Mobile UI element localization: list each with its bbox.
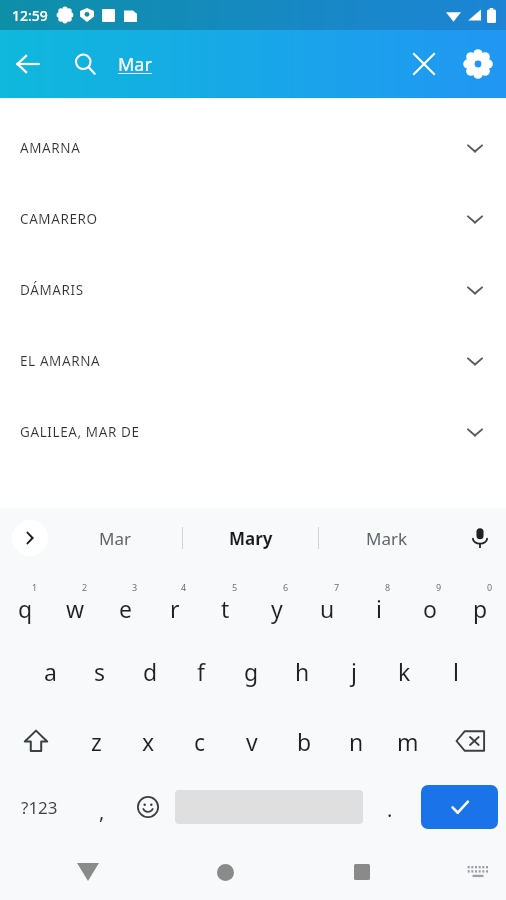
staticText: 1 xyxy=(32,581,38,593)
button[interactable]: 8 xyxy=(353,568,404,636)
button[interactable]: Enter xyxy=(421,785,498,829)
staticText: GALILEA, MAR DE xyxy=(20,423,140,441)
staticText: c xyxy=(194,726,206,757)
button[interactable]: d xyxy=(125,636,175,706)
button[interactable]: Clear xyxy=(398,38,450,90)
button[interactable]: ?123 xyxy=(0,776,78,838)
button[interactable]: 3 xyxy=(100,568,150,636)
button[interactable]: Settings xyxy=(450,36,506,92)
staticText: 4 xyxy=(181,581,187,593)
button[interactable]: m xyxy=(382,706,434,776)
staticText: EL AMARNA xyxy=(20,352,101,370)
button[interactable]: 1 xyxy=(0,568,50,636)
button[interactable]: AMARNA xyxy=(0,112,506,183)
button[interactable]: Back xyxy=(0,36,56,92)
staticText: o xyxy=(423,593,437,624)
staticText: 8 xyxy=(385,581,391,593)
button[interactable]: 4 xyxy=(150,568,200,636)
staticText: z xyxy=(91,726,102,757)
staticText: 2 xyxy=(82,581,88,593)
staticText: 3 xyxy=(132,581,138,593)
button[interactable]: Comma xyxy=(78,776,125,838)
button[interactable]: k xyxy=(379,636,430,706)
staticText: l xyxy=(453,656,459,687)
button[interactable]: Period xyxy=(367,776,413,838)
button[interactable]: Mar xyxy=(48,508,182,568)
staticText: j xyxy=(351,656,357,687)
staticText: Mar xyxy=(118,52,152,77)
button[interactable]: b xyxy=(278,706,330,776)
staticText: k xyxy=(398,656,411,687)
staticText: v xyxy=(246,726,258,757)
staticText: n xyxy=(349,726,364,757)
button[interactable]: Emoji xyxy=(125,776,171,838)
staticText: 12:59 xyxy=(12,6,48,25)
button[interactable]: 7 xyxy=(302,568,353,636)
button[interactable]: g xyxy=(226,636,277,706)
button[interactable]: Voice input xyxy=(454,508,506,568)
button[interactable]: l xyxy=(430,636,481,706)
staticText: x xyxy=(142,726,155,757)
button[interactable]: Mary xyxy=(183,508,318,568)
button[interactable]: Recents xyxy=(338,848,386,896)
button[interactable]: a xyxy=(25,636,75,706)
staticText: p xyxy=(473,593,488,624)
staticText: b xyxy=(297,726,312,757)
staticText: d xyxy=(143,656,158,687)
button[interactable]: EL AMARNA xyxy=(0,325,506,396)
button[interactable]: n xyxy=(330,706,382,776)
button[interactable]: 6 xyxy=(251,568,302,636)
staticText: ?123 xyxy=(21,796,58,819)
button[interactable]: 2 xyxy=(50,568,100,636)
staticText: g xyxy=(244,656,259,687)
staticText: e xyxy=(119,593,132,624)
button[interactable]: Backspace xyxy=(434,706,506,776)
staticText: q xyxy=(18,593,33,624)
staticText: m xyxy=(397,726,419,757)
button[interactable]: CAMARERO xyxy=(0,183,506,254)
staticText: 6 xyxy=(283,581,289,593)
button[interactable]: 5 xyxy=(200,568,251,636)
button[interactable]: s xyxy=(75,636,125,706)
button[interactable]: j xyxy=(328,636,379,706)
staticText: , xyxy=(99,798,105,825)
staticText: CAMARERO xyxy=(20,210,98,228)
button[interactable]: x xyxy=(122,706,174,776)
button[interactable]: Switch keyboard xyxy=(456,850,500,894)
staticText: 7 xyxy=(334,581,340,593)
button[interactable]: GALILEA, MAR DE xyxy=(0,396,506,467)
staticText: h xyxy=(295,656,310,687)
staticText: Mark xyxy=(366,527,408,550)
button[interactable]: f xyxy=(175,636,226,706)
staticText: w xyxy=(66,593,85,624)
button[interactable]: 9 xyxy=(404,568,455,636)
staticText: s xyxy=(94,656,106,687)
button[interactable]: h xyxy=(277,636,328,706)
staticText: f xyxy=(197,656,205,687)
button[interactable]: z xyxy=(71,706,122,776)
button[interactable]: Expand suggestions xyxy=(12,520,48,556)
staticText: . xyxy=(387,796,393,823)
staticText: Mar xyxy=(99,527,131,550)
button[interactable]: c xyxy=(174,706,226,776)
button[interactable]: DÁMARIS xyxy=(0,254,506,325)
staticText: AMARNA xyxy=(20,139,81,157)
staticText: a xyxy=(44,656,57,687)
staticText: t xyxy=(221,593,230,624)
button[interactable]: Shift xyxy=(0,706,71,776)
button[interactable]: Home xyxy=(201,848,249,896)
staticText: 9 xyxy=(436,581,442,593)
button[interactable]: Mark xyxy=(319,508,454,568)
staticText: 5 xyxy=(232,581,238,593)
staticText: Mary xyxy=(229,527,273,550)
staticText: DÁMARIS xyxy=(20,281,84,299)
staticText: y xyxy=(271,593,283,624)
staticText: 0 xyxy=(487,581,493,593)
button[interactable]: v xyxy=(226,706,278,776)
staticText: u xyxy=(320,593,335,624)
button[interactable]: 0 xyxy=(455,568,506,636)
staticText: i xyxy=(376,593,382,624)
button[interactable]: Hide keyboard xyxy=(64,848,112,896)
staticText: r xyxy=(170,593,180,624)
